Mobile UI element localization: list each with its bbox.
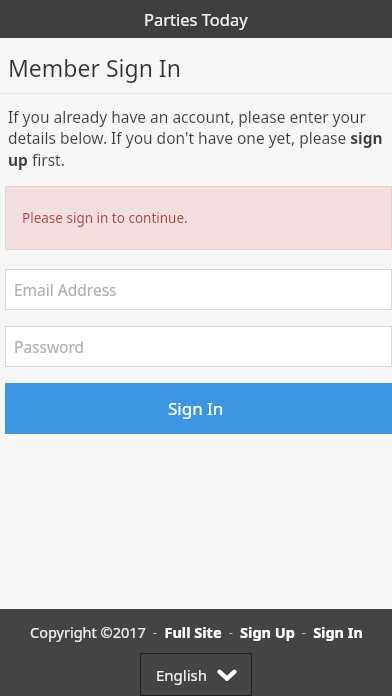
staticText: Email Address — [14, 279, 117, 300]
staticText: Copyright ©2017 — [30, 622, 146, 642]
staticText: English — [156, 665, 208, 685]
button[interactable]: Full Site — [164, 622, 222, 642]
staticText: Member Sign In — [8, 52, 181, 83]
button[interactable]: Email Address — [5, 269, 392, 310]
button[interactable]: Sign In — [5, 383, 392, 434]
staticText: Parties Today — [144, 8, 248, 30]
staticText: - — [295, 623, 313, 641]
staticText: If you already have an account, please e… — [8, 106, 386, 171]
button[interactable]: Select language — [140, 653, 252, 696]
staticText: Sign In — [168, 397, 224, 420]
staticText: Please sign in to continue. — [22, 209, 188, 227]
staticText: Password — [14, 336, 85, 357]
staticText: - — [222, 623, 240, 641]
staticText: Full Site — [164, 622, 222, 642]
button[interactable]: Sign In — [313, 622, 363, 642]
button[interactable]: Password — [5, 326, 392, 367]
staticText: Sign In — [313, 622, 363, 642]
staticText: - — [146, 623, 164, 641]
button[interactable]: Sign Up — [240, 622, 295, 642]
staticText: Sign Up — [240, 622, 295, 642]
